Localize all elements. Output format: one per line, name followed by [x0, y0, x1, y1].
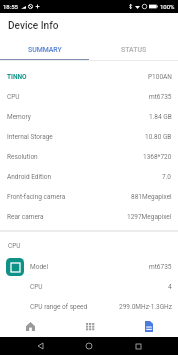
staticText: STATUS [121, 46, 147, 54]
button[interactable]: CPU [0, 277, 178, 297]
button[interactable]: Model [0, 257, 178, 277]
staticText: CPU [7, 93, 20, 101]
button[interactable]: Front-facing camera [0, 187, 178, 207]
button[interactable]: Recents [129, 337, 147, 355]
button[interactable]: Home [80, 337, 98, 355]
staticText: 1.84 GB [149, 113, 172, 121]
staticText: P100AN [148, 73, 172, 81]
staticText: Internal Storage [7, 133, 53, 141]
button[interactable]: Android Edition [0, 167, 178, 187]
button[interactable]: Back [31, 337, 49, 355]
staticText: 7.0 [162, 173, 172, 181]
staticText: Device Info [8, 20, 59, 32]
staticText: 1368*720 [143, 153, 172, 161]
staticText: 881Megapixel [131, 193, 172, 201]
button[interactable]: TINNO [0, 67, 178, 87]
staticText: Android Edition [7, 173, 52, 181]
staticText: mt6735 [149, 93, 172, 101]
button[interactable]: Internal Storage [0, 127, 178, 147]
staticText: mt6735 [149, 263, 172, 271]
staticText: TINNO [7, 73, 27, 81]
staticText: Rear camera [7, 213, 44, 221]
button[interactable]: Documents [119, 318, 178, 334]
button[interactable]: Memory [0, 107, 178, 127]
staticText: 18:55 [3, 3, 18, 10]
button[interactable]: Home [0, 318, 60, 334]
button[interactable]: Resolution [0, 147, 178, 167]
staticText: Memory [7, 113, 31, 121]
button[interactable]: CPU range of speed [0, 297, 178, 317]
button[interactable]: CPU [0, 87, 178, 107]
staticText: Front-facing camera [7, 193, 66, 201]
button[interactable]: Apps [60, 318, 119, 334]
staticText: CPU [30, 283, 43, 291]
button[interactable]: STATUS [89, 37, 178, 59]
staticText: 4 [168, 283, 172, 291]
staticText: CPU [8, 242, 21, 250]
staticText: 100% [160, 3, 175, 10]
staticText: 1297Megapixel [127, 213, 172, 221]
button[interactable]: SUMMARY [0, 37, 89, 59]
staticText: SUMMARY [28, 46, 62, 54]
staticText: CPU range of speed [30, 303, 88, 311]
button[interactable]: Rear camera [0, 207, 178, 227]
staticText: Resolution [7, 153, 38, 161]
staticText: 299.0MHz-1.3GHz [119, 303, 172, 311]
staticText: 10.80 GB [145, 133, 172, 141]
staticText: Model [30, 263, 49, 271]
